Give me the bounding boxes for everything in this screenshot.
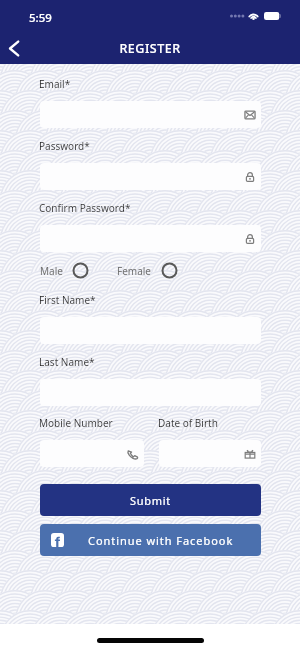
button[interactable]: Back [0,34,28,62]
button[interactable] [40,101,261,128]
staticText: Email* [39,77,71,91]
staticText: 5:59 [29,10,52,26]
staticText: Last Name* [39,355,95,369]
staticText: Mobile Number [39,416,113,430]
staticText: Male [40,264,63,278]
staticText: Female [117,264,152,278]
button[interactable] [40,440,144,467]
staticText: Submit [130,493,171,508]
staticText: Date of Birth [158,416,218,430]
staticText: Confirm Password* [39,201,131,215]
staticText: Continue with Facebook [88,533,234,548]
button[interactable] [40,163,261,190]
button[interactable]: Submit [40,484,261,516]
button[interactable]: Continue with Facebook [40,524,261,556]
button[interactable] [159,440,261,467]
button[interactable]: Female [117,262,178,279]
staticText: REGISTER [0,40,300,57]
button[interactable]: Male [40,262,89,279]
staticText: First Name* [39,293,96,307]
staticText: Password* [39,139,90,153]
button[interactable] [40,225,261,252]
